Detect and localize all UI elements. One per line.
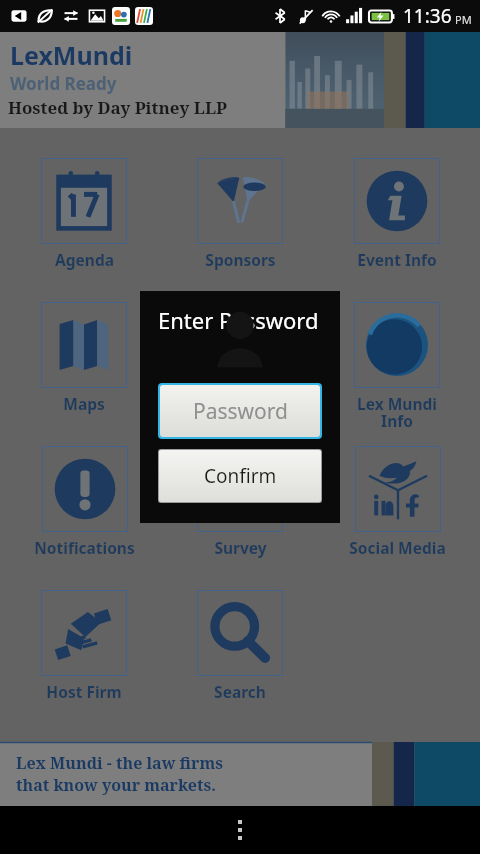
staticText: Maps — [63, 393, 105, 414]
button[interactable]: Survey — [197, 442, 283, 558]
button[interactable]: Sponsors — [197, 154, 283, 270]
button[interactable]: Event Info — [354, 154, 440, 270]
staticText: Host Firm — [46, 681, 122, 702]
staticText: Lex Mundi Info — [357, 393, 437, 432]
button[interactable]: Speakers — [197, 298, 283, 414]
staticText: Lex Mundi - the law firms — [16, 752, 223, 774]
staticText: Enter Password — [158, 305, 319, 335]
staticText: that know your markets. — [16, 774, 216, 796]
staticText: Password — [193, 397, 288, 426]
staticText: World Ready — [10, 72, 117, 95]
staticText: Social Media — [349, 537, 446, 558]
button[interactable]: Search — [197, 586, 283, 702]
button[interactable]: Social Media — [349, 442, 446, 558]
button[interactable]: Host Firm — [41, 586, 127, 702]
button[interactable]: Password — [160, 385, 320, 437]
button[interactable]: Lex Mundi Info — [354, 298, 440, 432]
staticText: PM — [455, 12, 472, 27]
staticText: Search — [214, 681, 266, 702]
staticText: Hosted by Day Pitney LLP — [8, 96, 227, 119]
button[interactable]: Confirm — [159, 450, 321, 502]
button[interactable]: Maps — [41, 298, 127, 414]
staticText: Agenda — [55, 249, 114, 270]
button[interactable]: Notifications — [34, 442, 135, 558]
staticText: LexMundi — [10, 38, 133, 72]
button[interactable]: More options — [216, 806, 264, 854]
staticText: Confirm — [204, 463, 277, 489]
button[interactable]: Agenda — [41, 154, 127, 270]
staticText: Speakers — [205, 393, 276, 414]
button[interactable]: LexMundi — [0, 32, 480, 128]
staticText: Event Info — [357, 249, 437, 270]
staticText: Notifications — [34, 537, 135, 558]
staticText: Sponsors — [205, 249, 276, 270]
button[interactable]: Lex Mundi - the law firms — [0, 742, 480, 806]
staticText: Survey — [214, 537, 267, 558]
staticText: 11:36 — [403, 3, 452, 29]
